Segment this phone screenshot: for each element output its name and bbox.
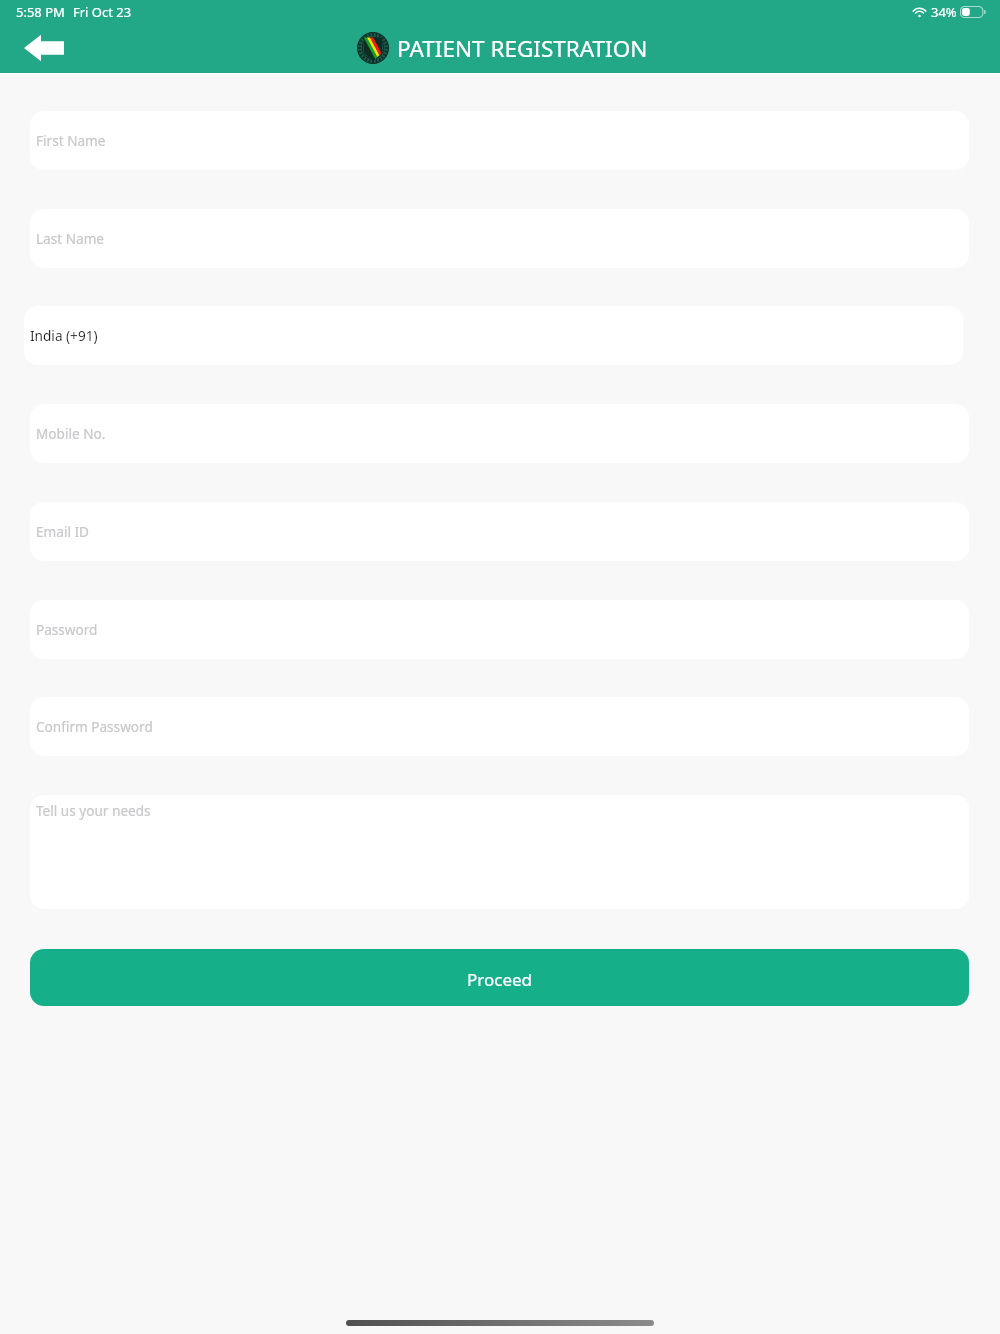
staticText: 5:58 PM: [16, 3, 65, 21]
staticText: Password: [36, 620, 98, 639]
button[interactable]: India (+91): [24, 306, 963, 365]
staticText: 34%: [931, 3, 957, 21]
button[interactable]: Back: [19, 30, 69, 66]
staticText: Mobile No.: [36, 424, 106, 443]
staticText: Email ID: [36, 522, 89, 541]
staticText: Tell us your needs: [36, 801, 151, 820]
staticText: PATIENT REGISTRATION: [397, 33, 648, 64]
button[interactable]: Mobile No.: [30, 404, 969, 463]
staticText: Proceed: [467, 968, 533, 991]
staticText: Fri Oct 23: [73, 3, 132, 21]
button[interactable]: Last Name: [30, 209, 969, 268]
button[interactable]: First Name: [30, 111, 969, 170]
staticText: First Name: [36, 131, 106, 150]
staticText: Confirm Password: [36, 717, 153, 736]
button[interactable]: Confirm Password: [30, 697, 969, 756]
staticText: Last Name: [36, 229, 105, 248]
staticText: India (+91): [30, 326, 98, 345]
button[interactable]: Password: [30, 600, 969, 659]
button[interactable]: Proceed: [30, 949, 969, 1006]
